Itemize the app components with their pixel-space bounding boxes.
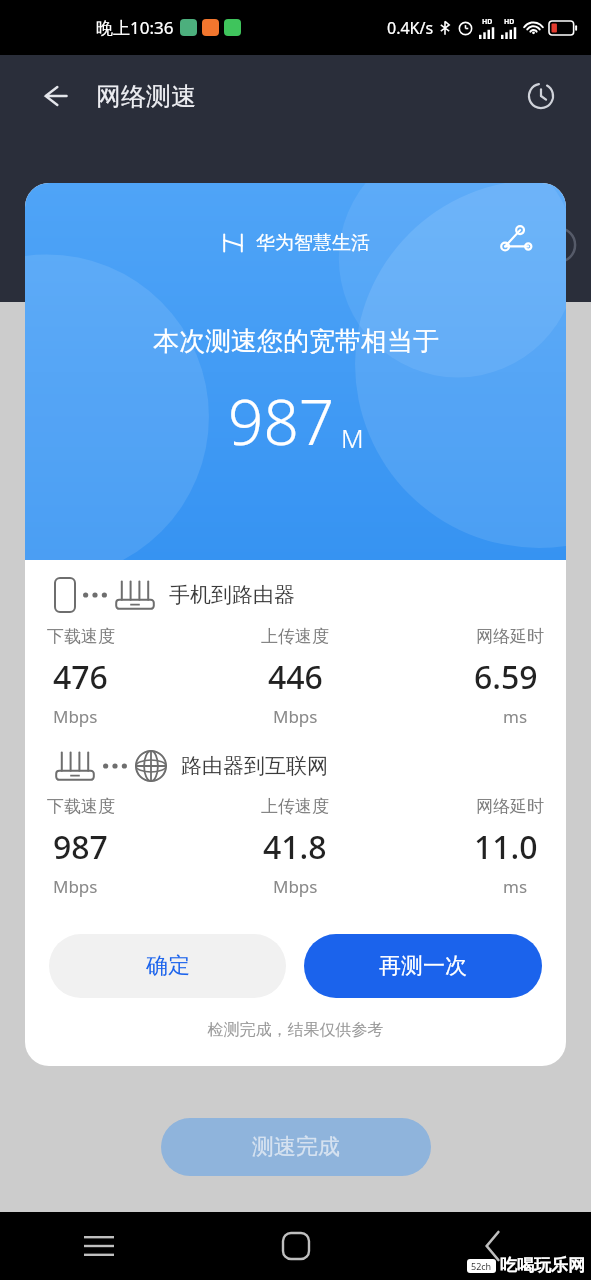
staticText: Mbps bbox=[201, 244, 241, 264]
button[interactable]: Back bbox=[28, 70, 80, 122]
staticText: 987 bbox=[228, 379, 335, 463]
staticText: ms bbox=[503, 875, 528, 898]
staticText: 0.4K/s bbox=[387, 17, 434, 39]
button[interactable]: 再测一次 bbox=[304, 934, 542, 998]
button[interactable]: Recents bbox=[0, 1212, 197, 1280]
staticText: 476 bbox=[53, 655, 108, 699]
button[interactable]: 测速完成 bbox=[161, 1118, 431, 1176]
staticText: 网络延时 bbox=[476, 626, 544, 647]
staticText: 下载速度 bbox=[47, 796, 115, 817]
staticText: 测速完成 bbox=[252, 1133, 340, 1161]
staticText: HD bbox=[482, 17, 493, 27]
staticText: 上传速度 bbox=[261, 796, 329, 817]
staticText: Mbps bbox=[53, 705, 98, 728]
staticText: 再测一次 bbox=[379, 952, 467, 980]
staticText: 路由器到互联网 bbox=[181, 753, 328, 779]
staticText: 晚上10:36 bbox=[96, 16, 174, 39]
staticText: 446 bbox=[268, 655, 323, 699]
staticText: HD bbox=[504, 17, 515, 27]
staticText: 987 bbox=[392, 218, 451, 264]
staticText: 11.0 bbox=[474, 825, 538, 869]
staticText: 本次测速您的宽带相当于 bbox=[153, 325, 439, 358]
button[interactable]: Back bbox=[394, 1212, 591, 1280]
staticText: 52ch bbox=[471, 1260, 492, 1272]
staticText: 确定 bbox=[146, 952, 190, 980]
staticText: ms bbox=[503, 705, 528, 728]
staticText: 987 bbox=[53, 825, 108, 869]
staticText: 上传速度 bbox=[261, 626, 329, 647]
staticText: 检测完成，结果仅供参考 bbox=[25, 1020, 566, 1040]
button[interactable]: 确定 bbox=[49, 934, 286, 998]
staticText: 华为智慧生活 bbox=[256, 231, 370, 255]
button[interactable]: Home bbox=[197, 1212, 394, 1280]
staticText: 网络延时 bbox=[476, 796, 544, 817]
staticText: 下载速度 bbox=[47, 626, 115, 647]
staticText: 网络测速 bbox=[96, 81, 196, 112]
staticText: Mbps bbox=[53, 875, 98, 898]
staticText: 吃喝玩乐网 bbox=[500, 1255, 585, 1276]
staticText: Mbps bbox=[273, 875, 318, 898]
staticText: 41.8 bbox=[263, 825, 327, 869]
button[interactable]: History bbox=[517, 72, 565, 120]
staticText: 手机到路由器 bbox=[169, 582, 295, 608]
staticText: M bbox=[341, 420, 364, 455]
staticText: 6.59 bbox=[474, 655, 538, 699]
staticText: Mbps bbox=[273, 705, 318, 728]
button[interactable]: Share bbox=[488, 213, 544, 269]
